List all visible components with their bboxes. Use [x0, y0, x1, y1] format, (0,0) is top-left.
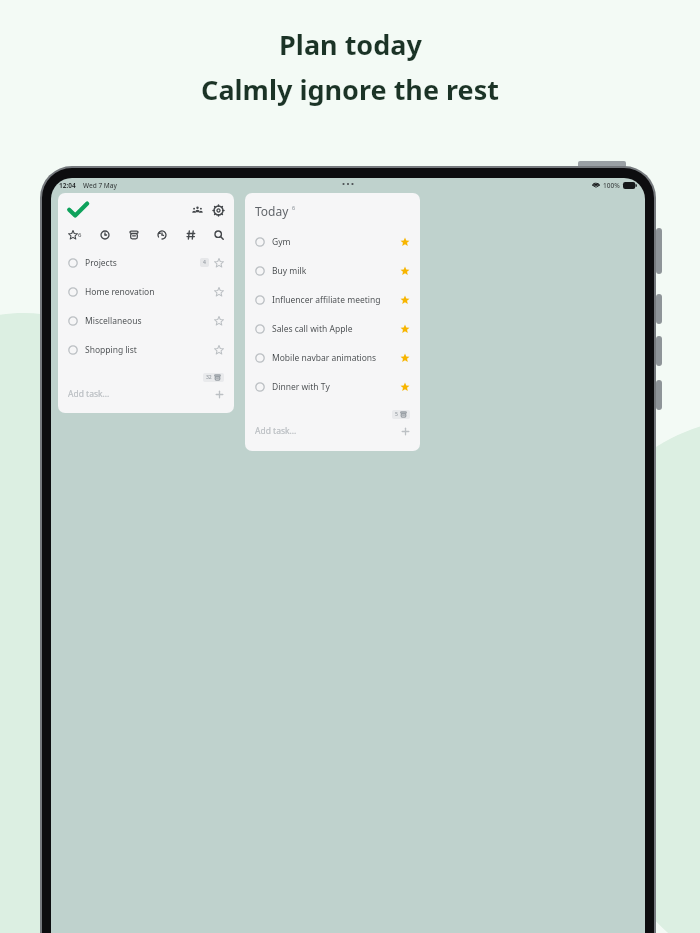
- button[interactable]: Star Buy milk: [400, 266, 410, 276]
- button[interactable]: Collaborators: [192, 205, 203, 216]
- button[interactable]: Starred 6: [68, 230, 82, 240]
- staticText: Dinner with Ty: [272, 381, 400, 393]
- button[interactable]: Add task...: [68, 384, 224, 404]
- button[interactable]: Upcoming: [100, 230, 110, 240]
- button[interactable]: Add task...: [255, 421, 410, 441]
- button[interactable]: Shopping list: [68, 335, 224, 364]
- staticText: 6: [292, 204, 296, 211]
- button[interactable]: Home: [68, 202, 88, 218]
- button[interactable]: History: [157, 230, 167, 240]
- staticText: 5: [395, 411, 398, 418]
- button[interactable]: Home renovation: [68, 277, 224, 306]
- other: Add task: [215, 390, 224, 399]
- button[interactable]: Star Sales call with Apple: [400, 324, 410, 334]
- staticText: Sales call with Apple: [272, 323, 400, 335]
- button[interactable]: Influencer affiliate meeting: [255, 285, 410, 314]
- staticText: Wed 7 May: [83, 181, 117, 190]
- staticText: Plan today: [279, 26, 422, 63]
- staticText: 6: [78, 231, 82, 239]
- staticText: Shopping list: [85, 344, 214, 356]
- staticText: Add task...: [255, 425, 401, 437]
- button[interactable]: Dinner with Ty: [255, 372, 410, 401]
- button[interactable]: Tags: [186, 230, 196, 240]
- staticText: Gym: [272, 236, 400, 248]
- button[interactable]: Projects: [68, 248, 224, 277]
- button[interactable]: Search: [214, 230, 224, 240]
- staticText: 32: [206, 374, 212, 381]
- staticText: 100%: [603, 181, 620, 190]
- button[interactable]: Miscellaneous: [68, 306, 224, 335]
- button[interactable]: Star Miscellaneous: [214, 316, 224, 326]
- staticText: Buy milk: [272, 265, 400, 277]
- button[interactable]: Star Mobile navbar animations: [400, 353, 410, 363]
- button[interactable]: Star Projects: [214, 258, 224, 268]
- button[interactable]: Star Home renovation: [214, 287, 224, 297]
- staticText: Home renovation: [85, 286, 214, 298]
- staticText: Today: [255, 203, 289, 219]
- button[interactable]: Archive: [129, 230, 139, 240]
- staticText: Miscellaneous: [85, 315, 214, 327]
- button[interactable]: Star Dinner with Ty: [400, 382, 410, 392]
- staticText: Influencer affiliate meeting: [272, 294, 400, 306]
- staticText: Mobile navbar animations: [272, 352, 400, 364]
- button[interactable]: Today: [255, 203, 296, 219]
- button[interactable]: Star Gym: [400, 237, 410, 247]
- staticText: 4: [203, 259, 206, 266]
- staticText: Add task...: [68, 388, 215, 400]
- button[interactable]: Sales call with Apple: [255, 314, 410, 343]
- button[interactable]: Star Influencer affiliate meeting: [400, 295, 410, 305]
- button[interactable]: Settings: [213, 205, 224, 216]
- button[interactable]: Buy milk: [255, 256, 410, 285]
- other: Add task: [401, 427, 410, 436]
- staticText: Calmly ignore the rest: [201, 71, 499, 108]
- button[interactable]: Star Shopping list: [214, 345, 224, 355]
- staticText: Projects: [85, 257, 200, 269]
- staticText: 12:04: [59, 181, 76, 190]
- button[interactable]: Gym: [255, 227, 410, 256]
- button[interactable]: Mobile navbar animations: [255, 343, 410, 372]
